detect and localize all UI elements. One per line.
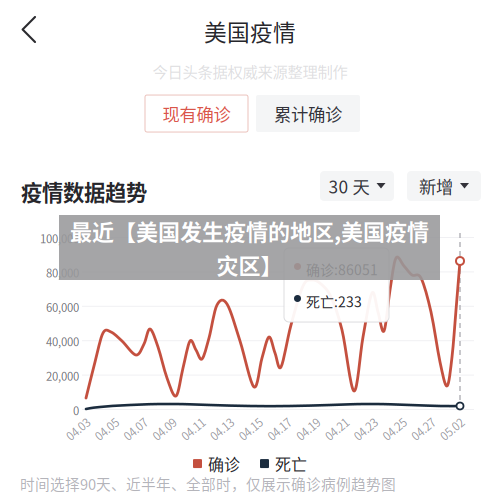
staticText: 05.02 (438, 421, 465, 437)
staticText: 最近【美国发生疫情的地区,美国疫情 (70, 215, 429, 246)
staticText: 100,000 (40, 230, 79, 246)
staticText: 04.21 (323, 421, 350, 437)
staticText: 04.11 (180, 421, 207, 437)
button[interactable]: 累计确诊 (256, 95, 360, 132)
staticText: 04.09 (151, 421, 178, 437)
button[interactable]: 现有确诊 (145, 95, 248, 132)
staticText: 04.23 (352, 421, 379, 437)
staticText: 确诊 (208, 452, 240, 475)
staticText: 累计确诊 (274, 101, 342, 126)
staticText: 04.03 (64, 421, 91, 437)
staticText: 04.17 (266, 421, 293, 437)
staticText: 现有确诊 (162, 101, 230, 126)
staticText: 死亡 (275, 452, 307, 475)
staticText: 时间选择90天、近半年、全部时，仅展示确诊病例趋势图 (20, 473, 396, 494)
staticText: 40,000 (46, 333, 79, 350)
staticText: 确诊:86051 (306, 259, 378, 279)
staticText: 04.07 (122, 421, 149, 437)
staticText: 80,000 (46, 264, 79, 281)
staticText: 0 (73, 402, 79, 418)
staticText: 死亡:233 (306, 291, 362, 311)
staticText: 今日头条据权威来源整理制作 (152, 60, 347, 82)
button[interactable]: 新增 (407, 171, 481, 201)
staticText: 美国疫情 (204, 15, 296, 47)
staticText: 04.19 (295, 421, 322, 437)
staticText: 30 天 (328, 173, 369, 199)
button[interactable]: Back (0, 2, 54, 60)
button[interactable]: 30 天 (320, 171, 394, 201)
staticText: 灾区】 (216, 248, 282, 280)
staticText: 04.05 (93, 421, 120, 437)
staticText: 04.27 (410, 421, 437, 437)
staticText: 04.13 (208, 421, 235, 437)
staticText: 04.25 (381, 421, 408, 437)
staticText: 新增 (419, 173, 453, 199)
staticText: 04.15 (237, 421, 264, 437)
staticText: 20,000 (46, 368, 79, 384)
staticText: 疫情数据趋势 (21, 176, 147, 207)
staticText: 60,000 (46, 299, 79, 315)
